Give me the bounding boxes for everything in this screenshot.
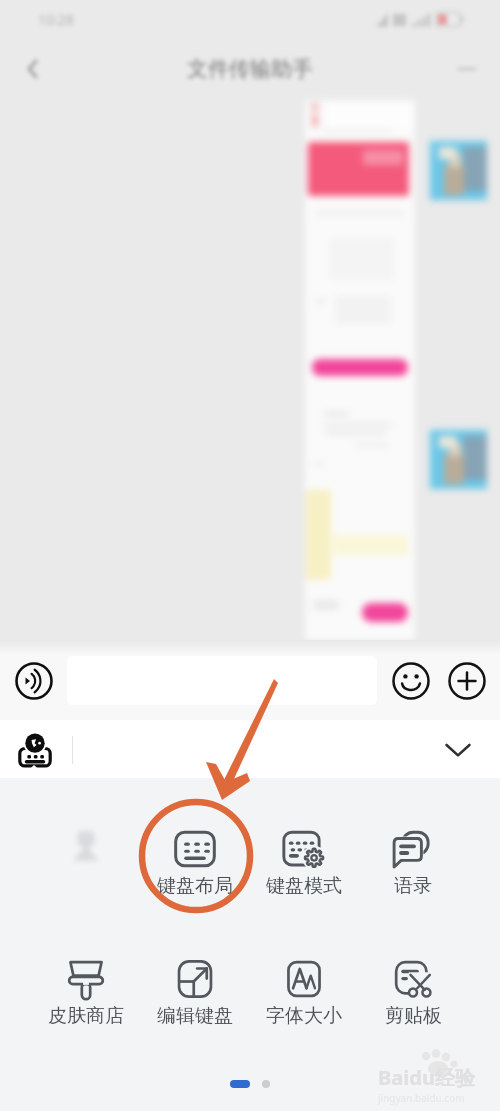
button[interactable]: 皮肤商店 [34,958,138,1028]
button[interactable]: Collapse keyboard [430,729,486,771]
button[interactable]: Voice input [12,659,56,703]
staticText: Baidu经验 [378,1064,475,1091]
staticText: 键盘模式 [266,874,342,898]
staticText: 10:28 [38,10,74,29]
button[interactable]: Emoji [389,659,433,703]
button[interactable]: Switch input method [13,728,57,772]
button[interactable]: More actions [445,659,489,703]
button[interactable]: 语录 [361,828,465,898]
staticText: 键盘布局 [157,874,233,898]
staticText: 字体大小 [266,1004,342,1028]
button[interactable]: 字体大小 [252,958,356,1028]
button[interactable]: 键盘布局 [143,828,247,898]
staticText: jingyan.baidu.com [378,1091,465,1105]
button[interactable] [67,656,377,705]
button[interactable]: More [446,48,488,90]
staticText: 文件传输助手 [187,56,313,82]
button[interactable]: Back [12,48,54,90]
button[interactable]: 键盘模式 [252,828,356,898]
button[interactable]: 剪贴板 [361,958,465,1028]
staticText: 皮肤商店 [48,1004,124,1028]
button[interactable]: 编辑键盘 [143,958,247,1028]
staticText: 剪贴板 [385,1004,442,1028]
button[interactable] [34,828,138,900]
staticText: 编辑键盘 [157,1004,233,1028]
staticText: 语录 [394,874,432,898]
